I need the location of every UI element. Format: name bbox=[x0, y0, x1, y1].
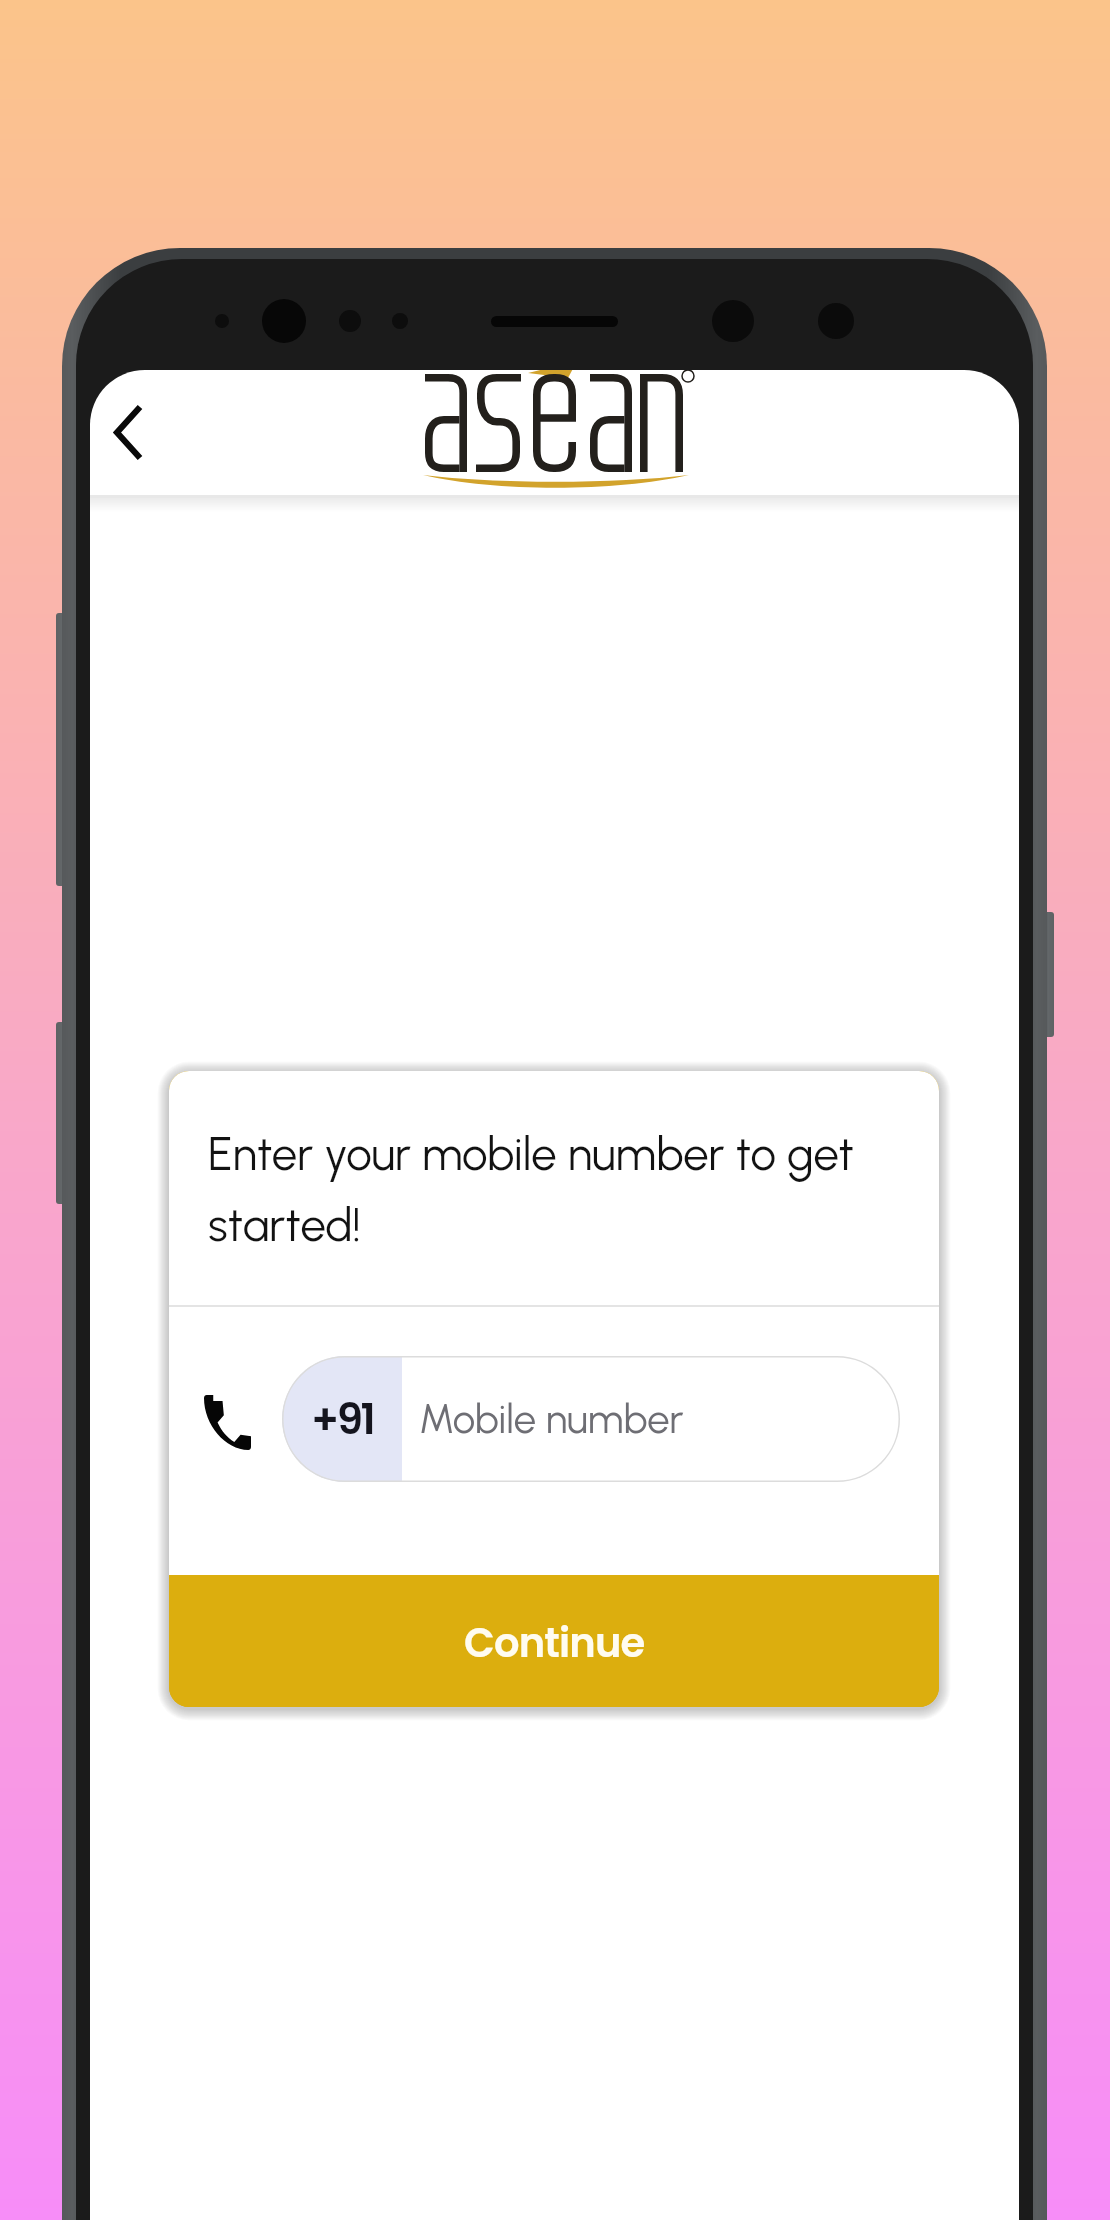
button[interactable]: Back bbox=[90, 376, 182, 486]
button[interactable]: +91 bbox=[282, 1356, 900, 1482]
staticText: +91 bbox=[311, 1390, 374, 1449]
staticText: Continue bbox=[464, 1615, 645, 1671]
button[interactable]: Continue bbox=[169, 1575, 939, 1707]
staticText: Enter your mobile number to get started! bbox=[208, 1127, 903, 1252]
staticText: Mobile number bbox=[419, 1395, 684, 1443]
